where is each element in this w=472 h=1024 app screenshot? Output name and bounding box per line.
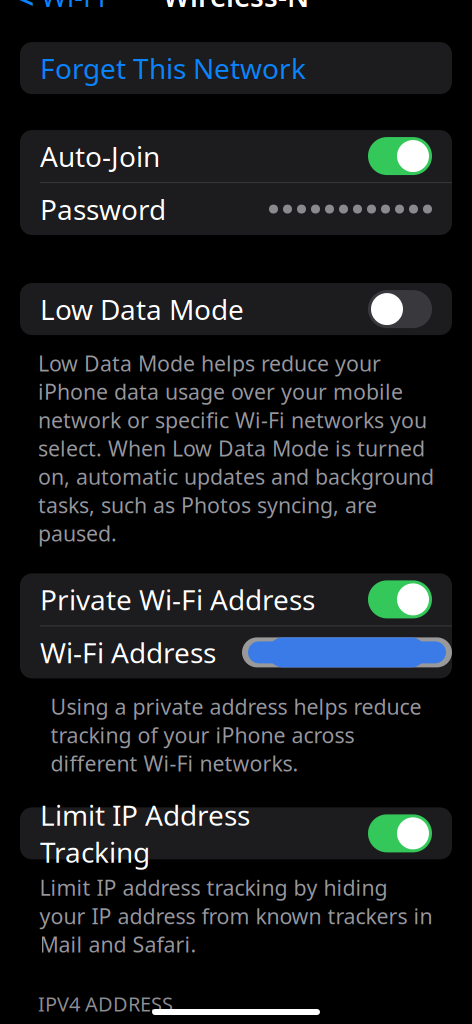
button[interactable]: Auto-Join [20, 130, 452, 182]
button[interactable]: < [0, 0, 119, 18]
button[interactable]: Password [20, 183, 452, 235]
staticText: Forget This Network [40, 49, 306, 87]
button[interactable]: Limit IP Address Tracking [20, 807, 452, 859]
button[interactable]: Wi-Fi Address [20, 626, 452, 678]
button[interactable]: Forget This Network [20, 42, 452, 94]
staticText: < [14, 0, 35, 20]
button[interactable]: Private Wi-Fi Address [20, 573, 452, 625]
staticText: Password [40, 190, 166, 228]
staticText: IPV4 ADDRESS [38, 990, 173, 1017]
staticText: Private Wi-Fi Address [40, 581, 315, 618]
staticText: Low Data Mode [40, 290, 244, 328]
staticText: Wireless-N [163, 0, 309, 15]
staticText: Wi-Fi Address [40, 634, 216, 671]
staticText: Low Data Mode helps reduce your iPhone d… [38, 349, 434, 547]
staticText: Limit IP Address Tracking [40, 796, 250, 871]
staticText: Limit IP address tracking by hiding your… [39, 873, 432, 958]
staticText: Auto-Join [40, 137, 160, 175]
staticText: Wi-Fi [41, 0, 105, 15]
staticText: Using a private address helps reduce tra… [50, 692, 421, 777]
button[interactable]: Low Data Mode [20, 283, 452, 335]
